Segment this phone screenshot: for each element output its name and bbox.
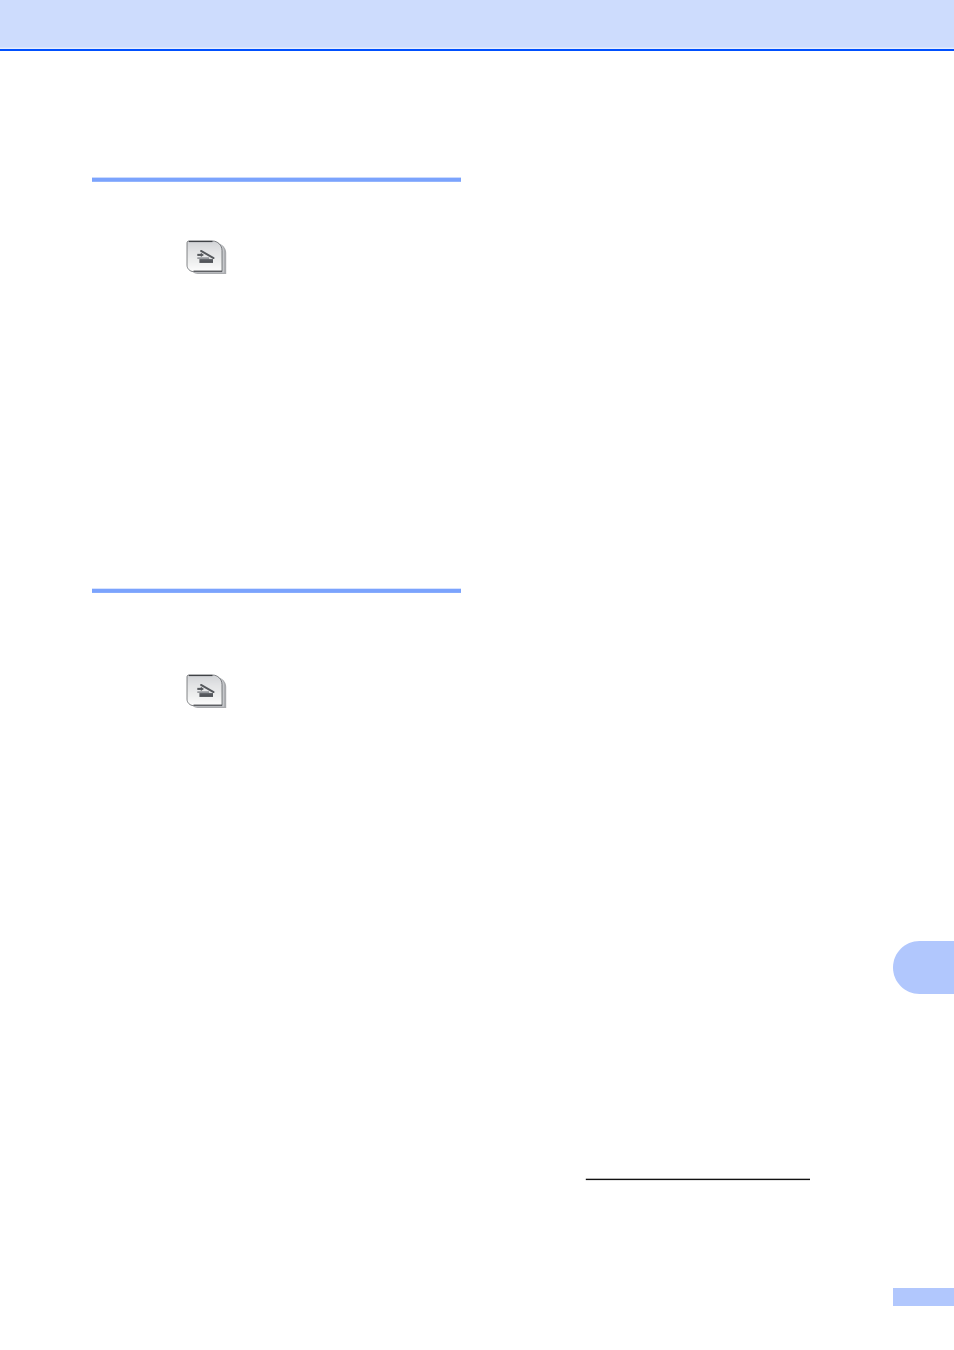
button[interactable]: Scan key [187,241,228,275]
button[interactable]: Chapter tab [893,941,954,994]
button[interactable]: Scan key [187,675,228,709]
